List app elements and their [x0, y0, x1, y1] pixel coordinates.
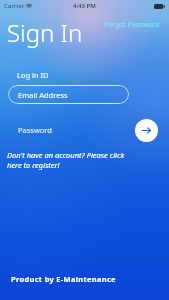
staticText: Don't have an account? Please click here…	[7, 150, 139, 170]
button[interactable]: Email Address	[8, 85, 129, 104]
staticText: 4:43 PM	[73, 2, 96, 10]
staticText: Email Address	[18, 90, 68, 100]
button[interactable]: Don't have an account? Please click here…	[7, 149, 139, 171]
staticText: Forgot Password	[104, 20, 160, 30]
staticText: Password	[18, 125, 52, 135]
staticText: Product by E-Maintenance	[11, 274, 116, 284]
staticText: Log in ID	[17, 70, 49, 80]
button[interactable]: Sign in	[135, 119, 158, 142]
staticText: Sign In	[7, 16, 83, 49]
button[interactable]: Password	[8, 120, 118, 140]
button[interactable]: Forgot Password	[102, 18, 162, 32]
staticText: Carrier	[4, 2, 24, 10]
